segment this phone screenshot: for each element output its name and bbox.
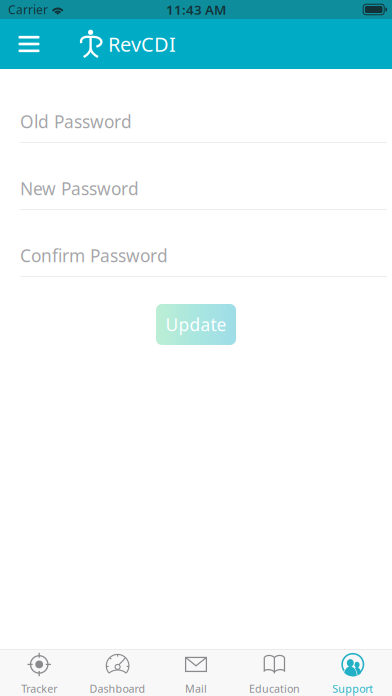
- button[interactable]: Update: [156, 304, 236, 345]
- staticText: Update: [165, 313, 226, 336]
- button[interactable]: Education: [235, 650, 314, 696]
- button[interactable]: Menu: [7, 22, 51, 66]
- staticText: Carrier: [8, 1, 48, 17]
- button[interactable]: Support: [314, 650, 392, 696]
- button[interactable]: Dashboard: [78, 650, 157, 696]
- staticText: Old Password: [20, 110, 132, 133]
- staticText: RevCDI: [108, 31, 176, 57]
- staticText: New Password: [20, 177, 139, 200]
- staticText: Dashboard: [90, 681, 146, 696]
- button[interactable]: Tracker: [0, 650, 78, 696]
- staticText: Confirm Password: [20, 244, 168, 267]
- staticText: Mail: [185, 681, 207, 696]
- staticText: Education: [249, 681, 300, 696]
- staticText: Tracker: [21, 681, 57, 696]
- staticText: Support: [332, 681, 373, 696]
- staticText: 11:43 AM: [166, 1, 226, 18]
- button[interactable]: Mail: [157, 650, 235, 696]
